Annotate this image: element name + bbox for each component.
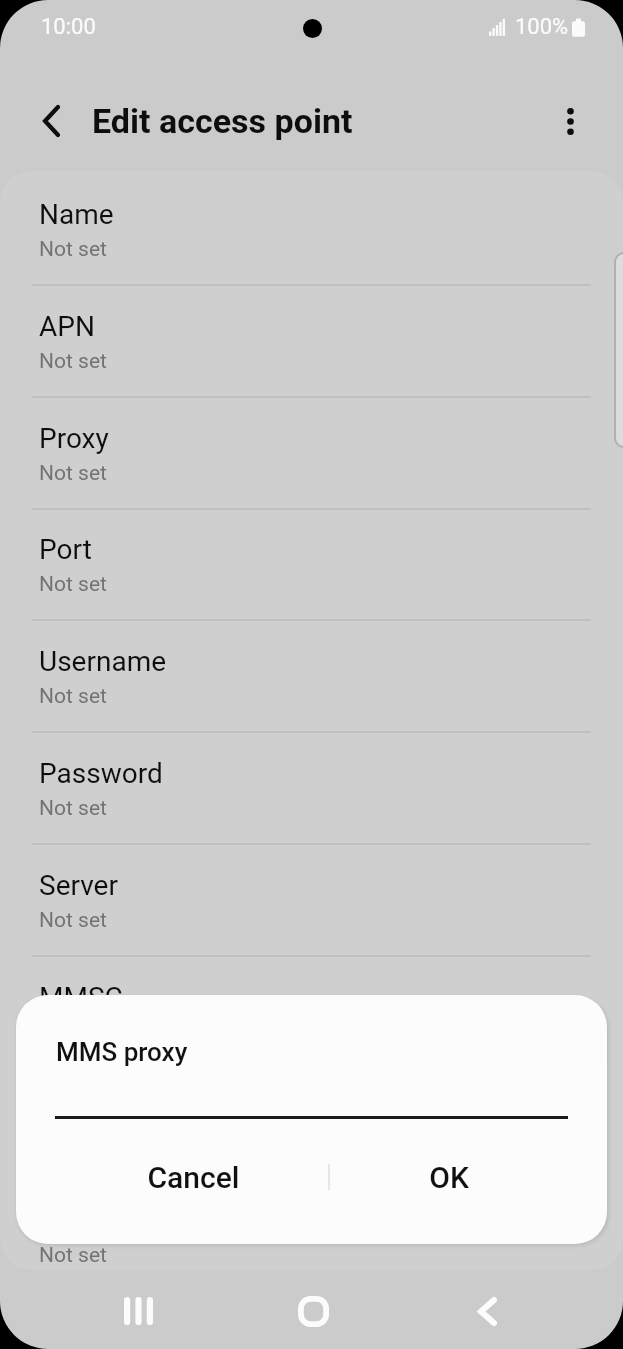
button[interactable]: MMS port xyxy=(0,1188,623,1270)
button[interactable]: APN xyxy=(0,294,623,405)
button[interactable]: Navigate up xyxy=(27,97,75,145)
button[interactable]: Name xyxy=(0,182,623,293)
button[interactable]: MMS proxy xyxy=(0,1076,623,1187)
staticText: Not set xyxy=(39,237,107,262)
staticText: Server xyxy=(39,869,118,902)
button[interactable]: Back xyxy=(453,1277,521,1345)
button[interactable]: Proxy xyxy=(0,406,623,517)
button[interactable]: More options xyxy=(546,97,594,145)
button[interactable]: Username xyxy=(0,629,623,740)
staticText: 100% xyxy=(515,14,569,40)
staticText: Not set xyxy=(39,1020,107,1045)
staticText: Not set xyxy=(39,796,107,821)
button[interactable]: Cancel xyxy=(48,1141,338,1213)
staticText: Not set xyxy=(39,572,107,597)
button[interactable]: OK xyxy=(329,1141,568,1213)
staticText: MMS proxy xyxy=(39,1092,180,1125)
staticText: Not set xyxy=(39,349,107,374)
staticText: Not set xyxy=(39,684,107,709)
button[interactable]: MMSC xyxy=(0,965,623,1076)
button[interactable]: Port xyxy=(0,517,623,628)
staticText: APN xyxy=(39,310,95,343)
staticText: Password xyxy=(39,757,163,790)
staticText: Username xyxy=(39,645,167,678)
staticText: Not set xyxy=(39,1243,107,1268)
button[interactable]: Password xyxy=(0,741,623,852)
button[interactable]: Recent apps xyxy=(104,1277,172,1345)
staticText: 10:00 xyxy=(41,14,96,40)
staticText: MMS proxy xyxy=(56,1037,188,1067)
staticText: Not set xyxy=(39,461,107,486)
staticText: Not set xyxy=(39,908,107,933)
staticText: Edit access point xyxy=(92,101,353,141)
staticText: MMSC xyxy=(39,981,123,1014)
staticText: OK xyxy=(429,1160,469,1195)
button[interactable]: Home xyxy=(279,1277,347,1345)
staticText: Port xyxy=(39,533,92,566)
staticText: Proxy xyxy=(39,422,109,455)
staticText: Cancel xyxy=(147,1160,240,1195)
staticText: Name xyxy=(39,198,114,231)
button[interactable]: Server xyxy=(0,853,623,964)
